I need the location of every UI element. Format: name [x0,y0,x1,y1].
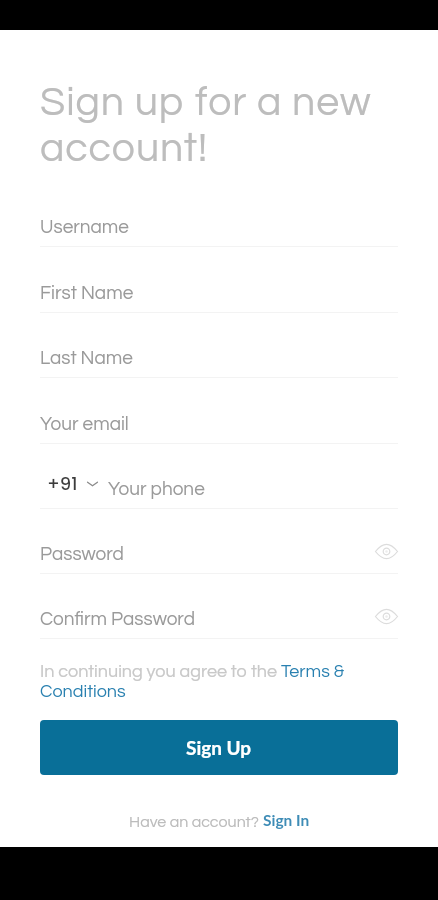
button[interactable]: Show password [371,601,401,631]
button[interactable]: Confirm Password [40,586,398,638]
staticText: Username [40,217,129,237]
staticText: Last Name [40,348,133,368]
staticText: Your email [40,414,129,434]
staticText: Have an account? [129,814,263,830]
staticText: Sign up for a new account! [40,81,372,170]
button[interactable]: Your email [40,391,398,443]
button[interactable]: Username [40,194,398,246]
button[interactable]: Sign Up [40,720,398,775]
button[interactable]: Password [40,521,398,573]
staticText: Sign Up [186,736,252,759]
button[interactable]: Show password [371,536,401,566]
button[interactable]: Last Name [40,325,398,377]
staticText: Password [40,544,124,564]
staticText: +91 [47,471,78,496]
button[interactable]: First Name [40,260,398,312]
button[interactable]: In continuing you agree to the Terms & C… [40,662,398,701]
staticText: First Name [40,283,134,303]
staticText: Confirm Password [40,609,195,629]
button[interactable]: Select country code [40,477,98,502]
button[interactable]: Have an account? [129,811,310,830]
staticText: Sign In [263,811,310,830]
staticText: Your phone [108,479,205,499]
